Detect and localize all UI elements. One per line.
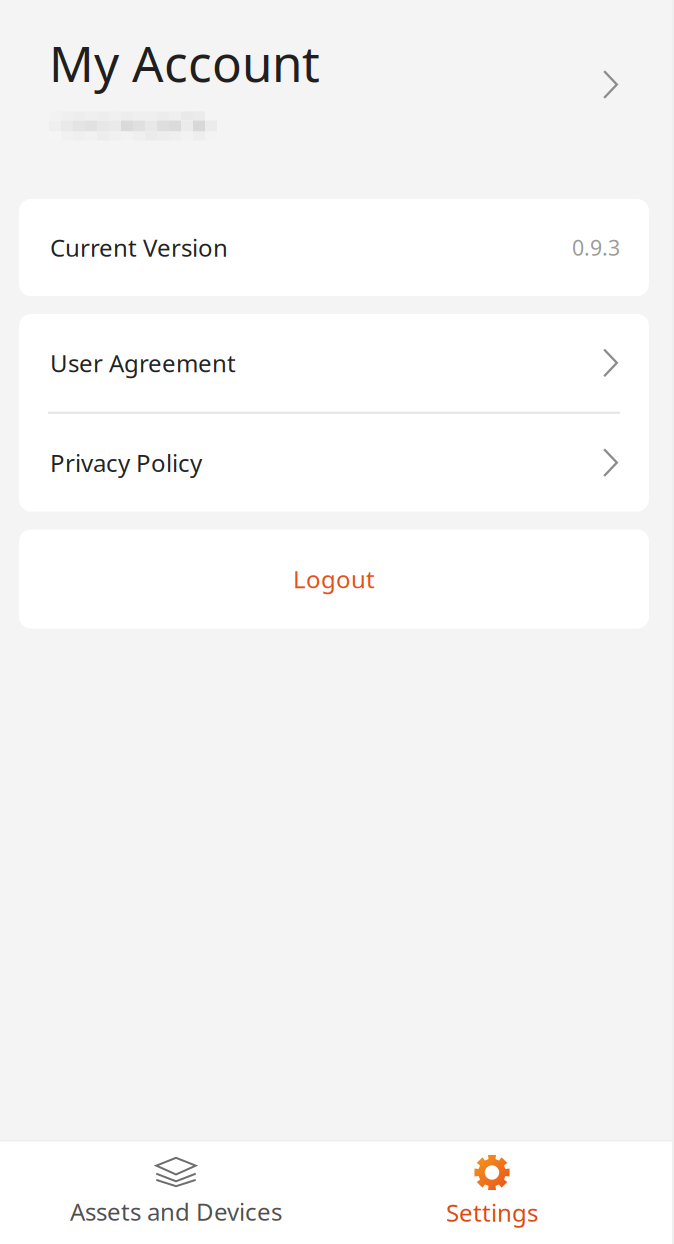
staticText: 0.9.3 bbox=[572, 233, 620, 262]
staticText: Logout bbox=[293, 563, 375, 595]
button[interactable]: Assets and Devices bbox=[0, 1141, 352, 1244]
staticText: Privacy Policy bbox=[50, 447, 202, 479]
button[interactable]: My Account bbox=[0, 0, 674, 199]
staticText: Settings bbox=[446, 1196, 538, 1228]
button[interactable]: Logout bbox=[19, 529, 649, 628]
staticText: Current Version bbox=[50, 232, 228, 263]
staticText: User Agreement bbox=[50, 347, 236, 379]
button[interactable]: User Agreement bbox=[19, 314, 649, 412]
staticText: My Account bbox=[49, 30, 320, 95]
button[interactable]: Privacy Policy bbox=[19, 414, 649, 512]
button[interactable]: Settings bbox=[352, 1141, 674, 1244]
staticText: Assets and Devices bbox=[70, 1195, 282, 1227]
